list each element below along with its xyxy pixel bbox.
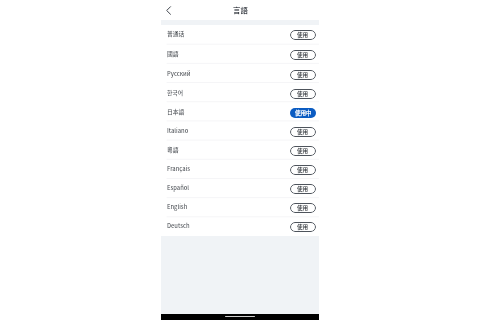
staticText: 使用 xyxy=(297,147,309,155)
staticText: 日本語 xyxy=(167,107,185,115)
button[interactable]: 使用 xyxy=(290,50,316,60)
button[interactable]: Français xyxy=(161,160,319,179)
button[interactable]: 使用 xyxy=(290,184,316,194)
button[interactable]: 國語 xyxy=(161,45,319,65)
staticText: English xyxy=(167,202,188,210)
staticText: 使用 xyxy=(297,51,309,59)
button[interactable]: Español xyxy=(161,179,319,198)
staticText: 使用 xyxy=(297,128,309,136)
button[interactable]: Back xyxy=(161,3,175,17)
button[interactable]: 日本語 xyxy=(161,103,319,122)
staticText: 使用 xyxy=(297,31,309,39)
button[interactable]: 使用 xyxy=(290,165,316,175)
staticText: 普通话 xyxy=(167,29,185,37)
staticText: 使用 xyxy=(297,166,309,174)
button[interactable]: 使用 xyxy=(290,146,316,156)
staticText: 使用 xyxy=(297,71,309,79)
staticText: 使用 xyxy=(297,185,309,193)
staticText: 國語 xyxy=(167,49,179,57)
staticText: Español xyxy=(167,183,190,191)
button[interactable]: 使用 xyxy=(290,127,316,137)
button[interactable]: 粵語 xyxy=(161,141,319,160)
staticText: Français xyxy=(167,164,191,172)
staticText: Русский xyxy=(167,69,191,77)
button[interactable]: 使用 xyxy=(290,203,316,213)
staticText: 言語 xyxy=(233,4,248,15)
button[interactable]: Русский xyxy=(161,65,319,84)
button[interactable]: 使用中 xyxy=(290,108,316,118)
staticText: 使用 xyxy=(297,204,309,212)
staticText: 使用 xyxy=(297,223,309,231)
button[interactable]: 한국어 xyxy=(161,84,319,103)
button[interactable]: 使用 xyxy=(290,70,316,80)
staticText: Italiano xyxy=(167,126,189,134)
button[interactable]: Deutsch xyxy=(161,217,319,236)
button[interactable]: Italiano xyxy=(161,122,319,141)
button[interactable]: 普通话 xyxy=(161,25,319,45)
staticText: Deutsch xyxy=(167,221,190,229)
staticText: 한국어 xyxy=(167,88,183,96)
staticText: 粵語 xyxy=(167,145,179,153)
staticText: 使用 xyxy=(297,90,309,98)
button[interactable]: 使用 xyxy=(290,89,316,99)
button[interactable]: English xyxy=(161,198,319,217)
button[interactable]: 使用 xyxy=(290,30,316,40)
button[interactable]: 使用 xyxy=(290,222,316,232)
staticText: 使用中 xyxy=(295,109,312,117)
